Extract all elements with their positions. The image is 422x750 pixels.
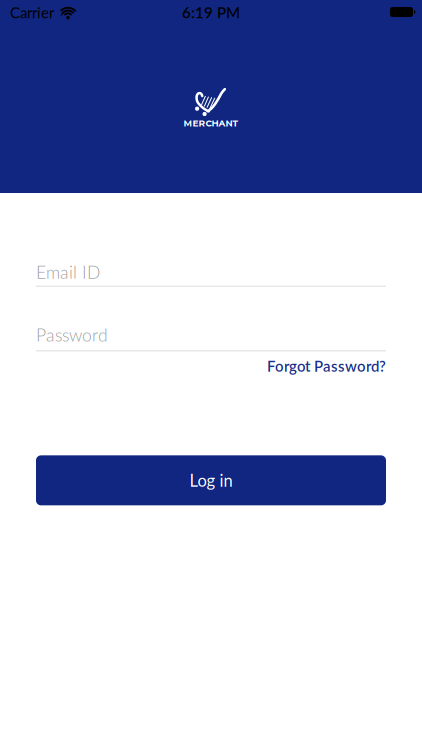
staticText: MERCHANT — [183, 118, 238, 129]
staticText: Carrier — [10, 3, 54, 21]
staticText: Log in — [189, 470, 232, 490]
button[interactable]: Password — [36, 324, 386, 351]
staticText: Password — [36, 324, 108, 345]
button[interactable]: Log in — [36, 455, 386, 505]
staticText: 6:19 PM — [182, 3, 240, 21]
button[interactable]: Forgot Password? — [267, 357, 386, 375]
button[interactable]: Email ID — [36, 261, 386, 287]
staticText: Email ID — [36, 261, 100, 282]
staticText: Forgot Password? — [267, 357, 386, 375]
